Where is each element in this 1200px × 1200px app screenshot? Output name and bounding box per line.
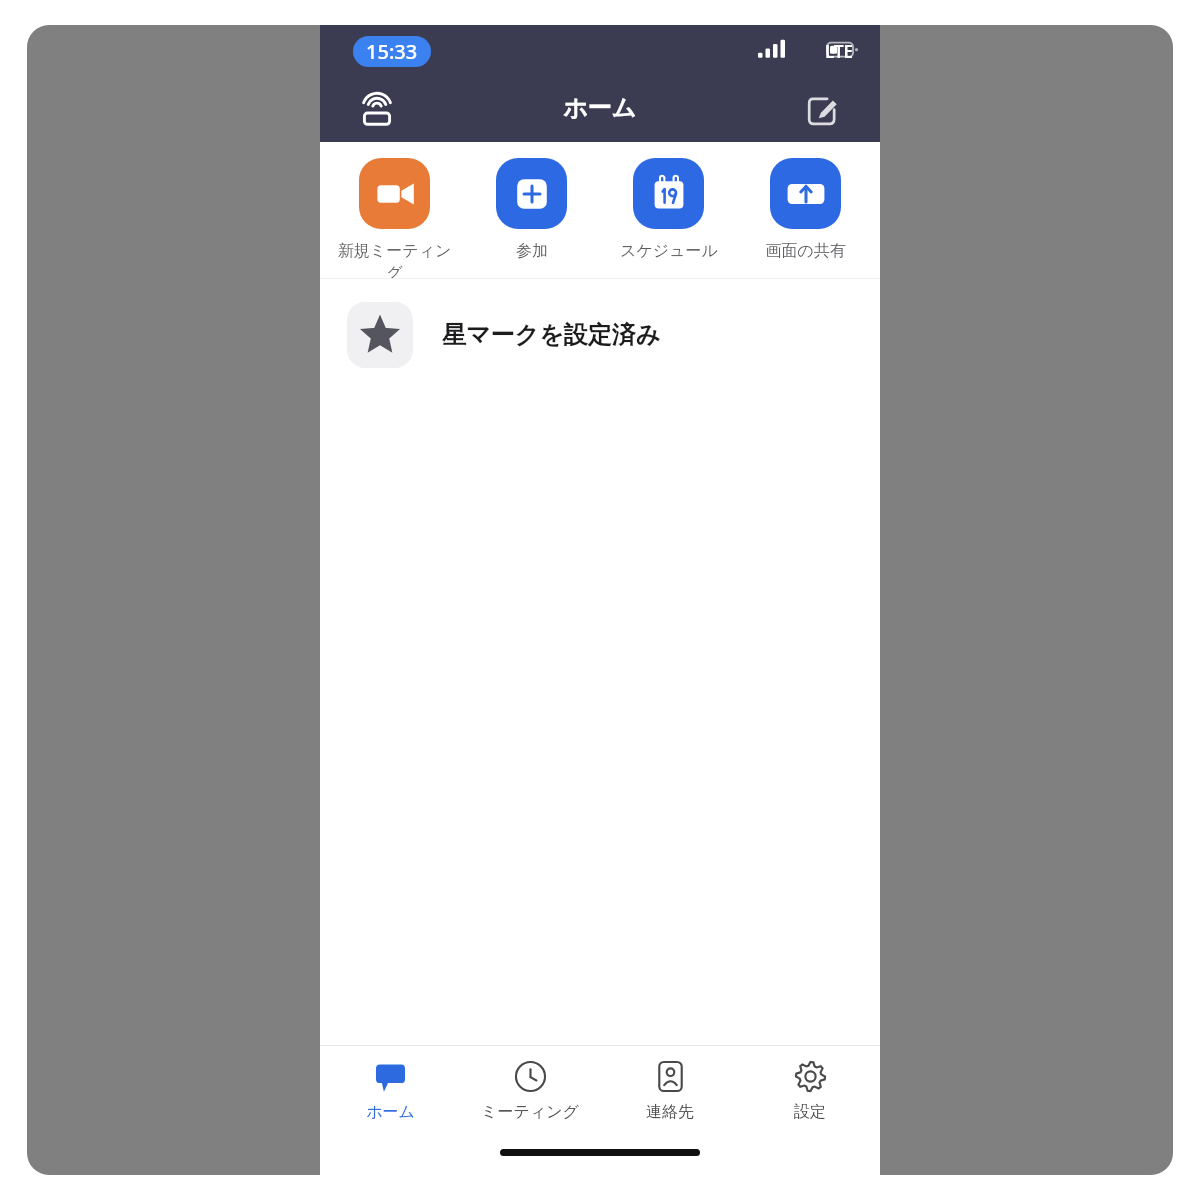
button[interactable]: ホーム [320, 1046, 460, 1138]
staticText: 参加 [516, 241, 548, 261]
staticText: 15:33 [366, 38, 418, 65]
staticText: ホーム [366, 1102, 415, 1122]
staticText: ミーティング [481, 1102, 579, 1122]
staticText: 画面の共有 [765, 241, 846, 261]
button[interactable]: 星マークを設定済み [320, 279, 880, 391]
button[interactable]: 設定 [740, 1046, 880, 1138]
staticText: 星マークを設定済み [442, 320, 661, 350]
staticText: 設定 [794, 1102, 826, 1122]
staticText: 連絡先 [646, 1102, 694, 1122]
button[interactable]: スケジュール [606, 142, 731, 261]
staticText: スケジュール [620, 241, 718, 261]
button[interactable]: ミーティング [460, 1046, 600, 1138]
button[interactable]: Share screen [353, 87, 401, 135]
button[interactable]: 画面の共有 [743, 142, 868, 261]
button[interactable]: 新規ミーティング [332, 142, 457, 278]
staticText: ホーム [563, 93, 637, 123]
button[interactable]: 連絡先 [600, 1046, 740, 1138]
button[interactable]: Compose [798, 87, 846, 135]
button[interactable]: 参加 [469, 142, 594, 261]
staticText: 新規ミーティング [332, 241, 457, 278]
staticText: LTE [825, 40, 854, 63]
